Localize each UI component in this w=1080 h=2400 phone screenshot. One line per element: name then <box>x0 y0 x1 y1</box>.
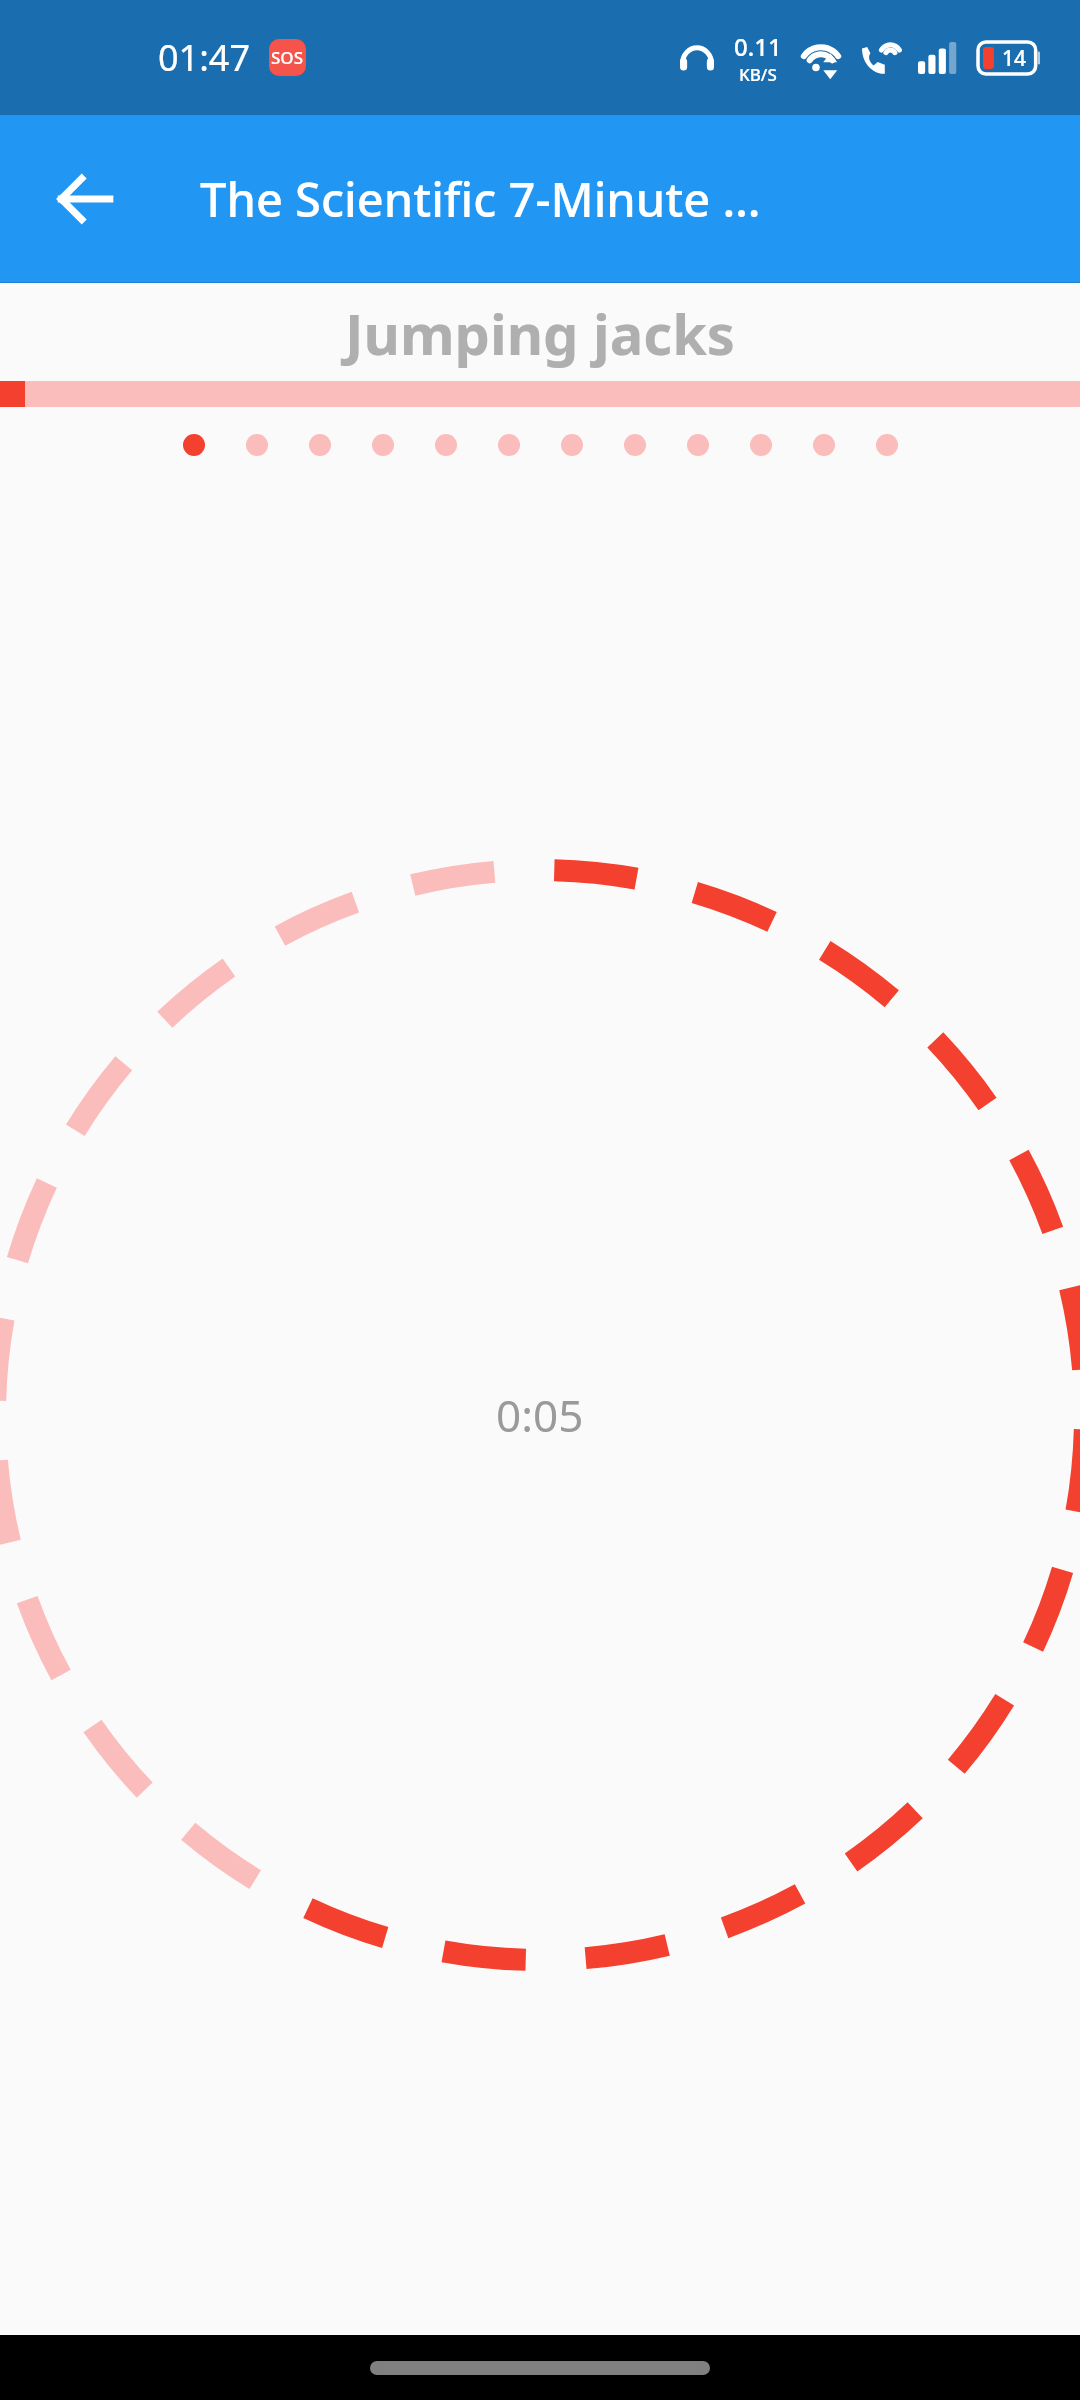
staticText: 0.11 <box>734 30 782 63</box>
staticText: 14 <box>1002 44 1027 73</box>
staticText: The Scientific 7-Minute … <box>200 167 761 231</box>
staticText: 01:47 <box>158 33 251 82</box>
staticText: KB/S <box>739 63 777 86</box>
staticText: Jumping jacks <box>345 295 735 371</box>
button[interactable]: 0:05 <box>496 1385 584 1445</box>
staticText: SOS <box>271 46 304 69</box>
button[interactable]: Back <box>26 140 144 258</box>
